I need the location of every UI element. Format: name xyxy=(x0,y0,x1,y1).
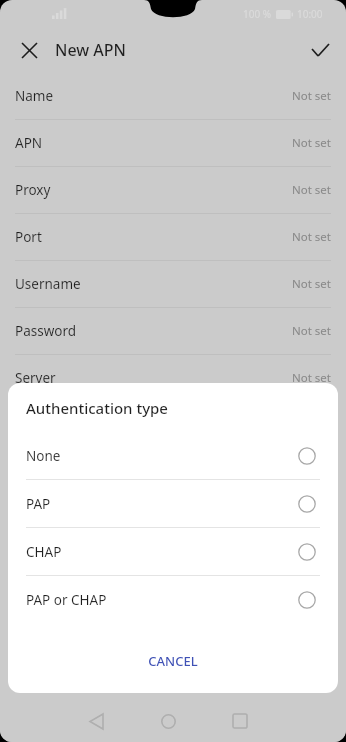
button[interactable]: Back xyxy=(74,700,118,742)
staticText: APN xyxy=(15,134,43,152)
button[interactable]: PAP or CHAP xyxy=(8,576,338,623)
button[interactable]: MNC xyxy=(0,590,346,637)
staticText: Not set xyxy=(292,605,331,621)
staticText: PAP xyxy=(26,495,51,513)
button[interactable]: Close xyxy=(12,33,46,67)
staticText: None xyxy=(26,447,61,465)
button[interactable]: MCC xyxy=(0,543,346,590)
button[interactable]: Server xyxy=(0,355,346,402)
staticText: Name xyxy=(15,87,54,105)
staticText: CHAP xyxy=(26,543,62,561)
staticText: MMS port xyxy=(15,510,78,528)
staticText: Port xyxy=(15,228,42,246)
button[interactable]: APN protocol xyxy=(0,731,346,742)
button[interactable]: PAP xyxy=(8,480,338,528)
button[interactable]: Name xyxy=(0,73,346,120)
button[interactable]: MMS port xyxy=(0,496,346,543)
staticText: Password xyxy=(15,322,77,340)
staticText: CANCEL xyxy=(148,652,198,670)
staticText: Not set xyxy=(292,464,331,480)
staticText: MMS proxy xyxy=(15,463,86,481)
staticText: Not set xyxy=(292,276,331,292)
staticText: 100 % xyxy=(243,7,272,21)
staticText: Not set xyxy=(292,88,331,104)
staticText: Username xyxy=(15,275,81,293)
staticText: Proxy xyxy=(15,181,51,199)
button[interactable]: Save xyxy=(302,32,338,68)
button[interactable]: Home xyxy=(146,700,190,742)
button[interactable]: APN type xyxy=(0,684,346,731)
staticText: Not set xyxy=(292,229,331,245)
staticText: Not set xyxy=(292,323,331,339)
staticText: Not set xyxy=(292,182,331,198)
button[interactable]: CANCEL xyxy=(8,639,338,683)
button[interactable]: Password xyxy=(0,308,346,355)
button[interactable]: CHAP xyxy=(8,528,338,576)
staticText: Not set xyxy=(292,511,331,527)
button[interactable]: Proxy xyxy=(0,167,346,214)
staticText: New APN xyxy=(55,39,127,61)
button[interactable]: None xyxy=(8,432,338,480)
staticText: Not set xyxy=(292,135,331,151)
staticText: Not set xyxy=(292,558,331,574)
staticText: MNC xyxy=(15,604,47,622)
button[interactable]: Authentication type xyxy=(0,637,346,684)
button[interactable]: Port xyxy=(0,214,346,261)
staticText: PAP or CHAP xyxy=(26,591,107,609)
staticText: Server xyxy=(15,369,56,387)
staticText: 10:00 xyxy=(297,7,323,21)
button[interactable]: MMS proxy xyxy=(0,449,346,496)
staticText: Not set xyxy=(292,370,331,386)
button[interactable]: Recents xyxy=(218,700,262,742)
staticText: Authentication type xyxy=(26,398,168,418)
button[interactable]: Username xyxy=(0,261,346,308)
button[interactable]: APN xyxy=(0,120,346,167)
button[interactable]: MMSC xyxy=(0,402,346,449)
